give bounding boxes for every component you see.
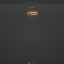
staticText: More	[31, 61, 37, 64]
staticText: START	[29, 11, 37, 14]
button[interactable]: START	[27, 10, 38, 16]
staticText: Today	[29, 6, 35, 9]
button[interactable]: More options	[0, 61, 64, 64]
staticText: WORKOUT	[26, 1, 38, 4]
